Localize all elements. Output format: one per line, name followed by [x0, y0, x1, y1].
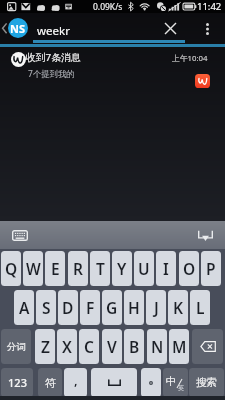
- staticText: T: [96, 258, 105, 279]
- staticText: X: [62, 336, 72, 357]
- button[interactable]: K: [168, 290, 188, 325]
- staticText: 英: [178, 384, 184, 392]
- staticText: Y: [117, 258, 127, 279]
- button[interactable]: R: [68, 251, 88, 286]
- button[interactable]: A: [14, 290, 34, 325]
- staticText: E: [51, 258, 60, 279]
- button[interactable]: 符: [38, 368, 62, 397]
- button[interactable]: Backspace: [192, 329, 223, 364]
- staticText: 0.09K/s: [93, 1, 123, 13]
- staticText: P: [206, 258, 216, 279]
- button[interactable]: T: [90, 251, 110, 286]
- staticText: A: [19, 297, 30, 318]
- button[interactable]: ,: [64, 368, 87, 397]
- button[interactable]: Full stop: [141, 368, 161, 397]
- button[interactable]: Z: [35, 329, 55, 364]
- staticText: L: [196, 297, 205, 318]
- button[interactable]: 搜索: [189, 368, 224, 397]
- button[interactable]: Switch input method: [6, 221, 34, 249]
- button[interactable]: G: [102, 290, 122, 325]
- button[interactable]: F: [80, 290, 100, 325]
- staticText: V: [107, 336, 117, 357]
- button[interactable]: X: [57, 329, 77, 364]
- staticText: 11:42: [197, 0, 222, 13]
- button[interactable]: Space: [91, 368, 137, 397]
- button[interactable]: P: [201, 251, 221, 286]
- button[interactable]: Q: [1, 251, 21, 286]
- staticText: Z: [41, 336, 50, 357]
- button[interactable]: Clear query: [157, 13, 183, 44]
- staticText: 上午10:04: [172, 53, 208, 64]
- staticText: R: [73, 258, 83, 279]
- staticText: K: [173, 297, 184, 318]
- staticText: Q: [5, 258, 18, 279]
- button[interactable]: Y: [112, 251, 132, 286]
- staticText: 分词: [7, 341, 26, 353]
- staticText: 符: [45, 376, 56, 390]
- staticText: W: [26, 258, 41, 279]
- staticText: 搜索: [196, 376, 217, 389]
- staticText: U: [138, 258, 150, 279]
- staticText: C: [84, 336, 94, 357]
- staticText: H: [128, 297, 140, 318]
- button[interactable]: O: [179, 251, 199, 286]
- button[interactable]: B: [124, 329, 144, 364]
- button[interactable]: L: [190, 290, 210, 325]
- staticText: J: [154, 297, 159, 318]
- staticText: ,: [74, 371, 78, 389]
- staticText: D: [62, 297, 74, 318]
- button[interactable]: S: [36, 290, 56, 325]
- button[interactable]: D: [58, 290, 78, 325]
- button[interactable]: U: [134, 251, 154, 286]
- staticText: 中: [166, 375, 177, 388]
- staticText: 123: [8, 375, 27, 390]
- button[interactable]: 123: [1, 368, 33, 397]
- button[interactable]: 中: [163, 368, 188, 397]
- staticText: G: [106, 297, 118, 318]
- staticText: B: [129, 336, 140, 357]
- button[interactable]: H: [124, 290, 144, 325]
- staticText: M: [172, 336, 187, 357]
- button[interactable]: E: [45, 251, 65, 286]
- staticText: N: [151, 336, 164, 357]
- button[interactable]: N: [147, 329, 167, 364]
- button[interactable]: V: [102, 329, 122, 364]
- button[interactable]: M: [169, 329, 189, 364]
- staticText: 7个提到我的: [28, 68, 75, 79]
- button[interactable]: I: [156, 251, 176, 286]
- button[interactable]: Navigate up: [0, 13, 31, 44]
- staticText: S: [42, 297, 51, 318]
- button[interactable]: Hide keyboard: [191, 221, 219, 249]
- staticText: O: [183, 258, 196, 279]
- staticText: I: [163, 258, 169, 279]
- staticText: NS: [10, 21, 26, 36]
- staticText: 收到7条消息: [26, 51, 81, 64]
- staticText: F: [86, 297, 95, 318]
- button[interactable]: 收到7条消息: [0, 47, 225, 91]
- staticText: weekr: [37, 23, 70, 39]
- button[interactable]: More options: [195, 13, 219, 44]
- button[interactable]: C: [79, 329, 99, 364]
- button[interactable]: 分词: [1, 329, 31, 364]
- button[interactable]: J: [146, 290, 166, 325]
- button[interactable]: W: [23, 251, 43, 286]
